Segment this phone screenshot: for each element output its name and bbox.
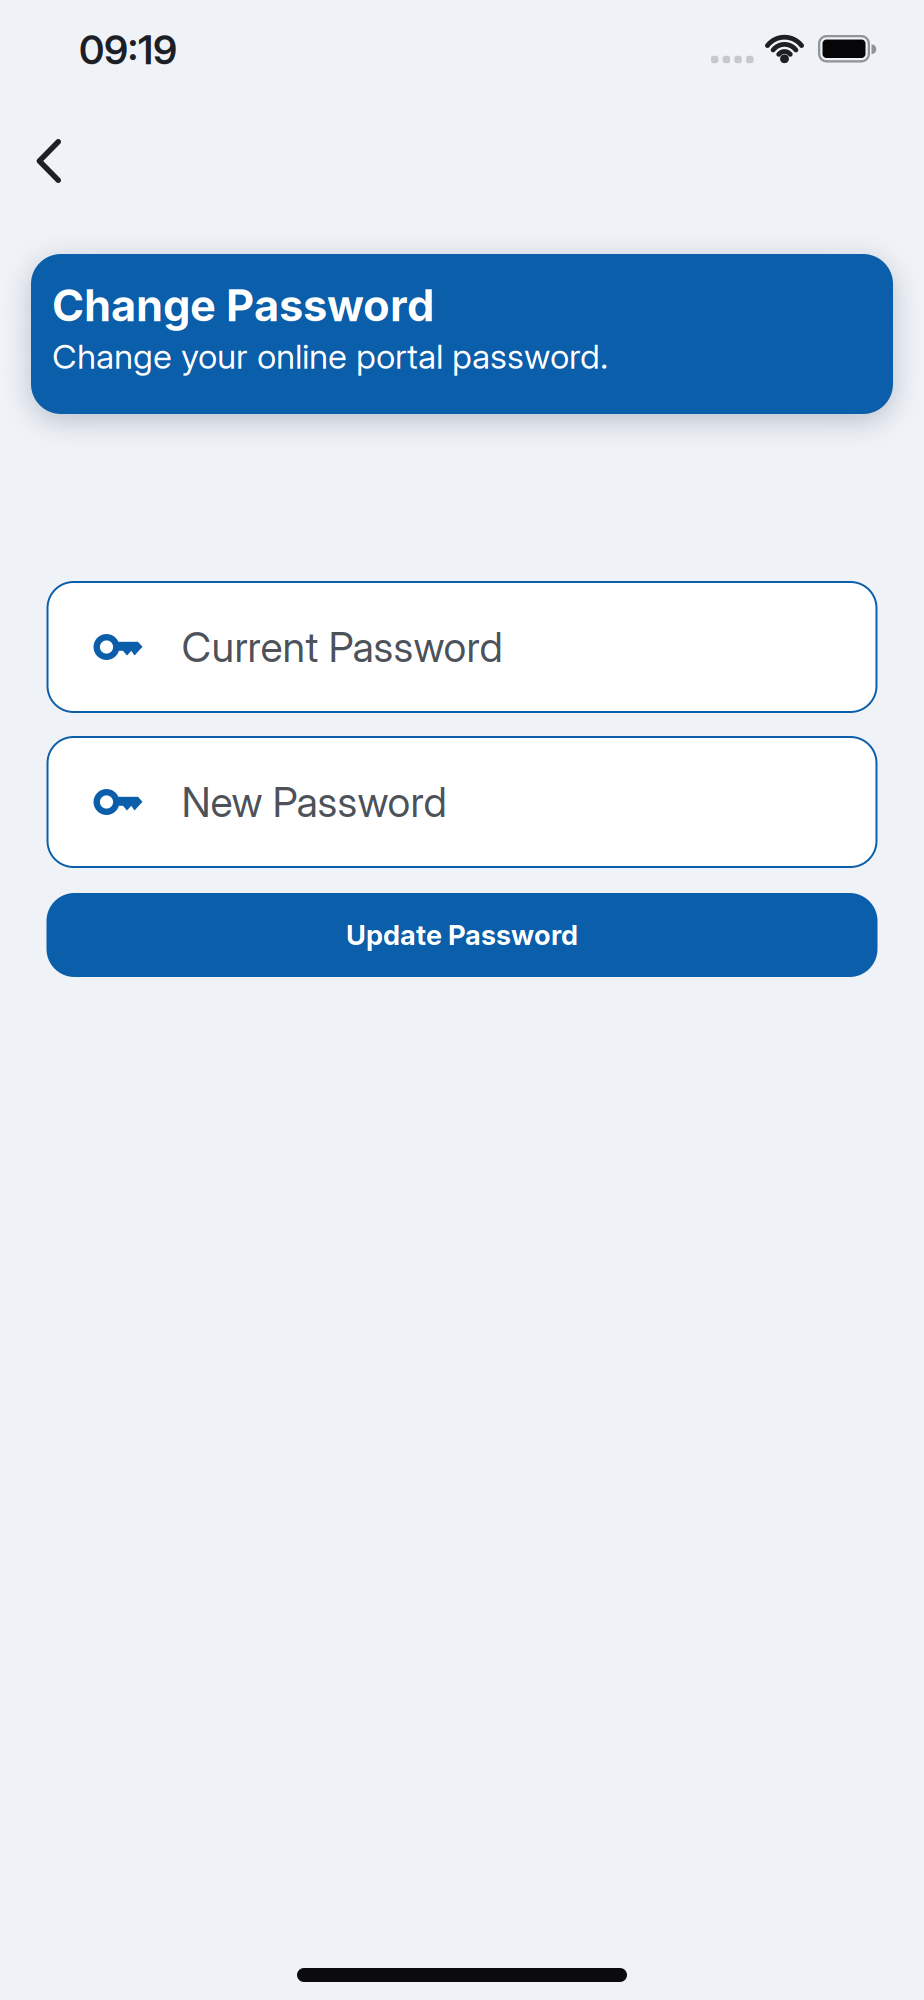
button[interactable]: New Password [46,736,877,868]
button[interactable]: Back [37,139,61,183]
staticText: Update Password [346,918,578,952]
staticText: 09:19 [79,26,177,74]
staticText: Current Password [181,622,502,672]
staticText: Change your online portal password. [52,336,608,377]
button[interactable]: Current Password [46,581,877,713]
staticText: New Password [181,777,446,827]
staticText: Change Password [52,279,434,332]
button[interactable]: Update Password [46,893,877,977]
